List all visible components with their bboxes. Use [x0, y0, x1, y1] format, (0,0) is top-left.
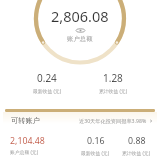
staticText: 0.88: [128, 135, 146, 147]
staticText: 最新收益 (元): [33, 88, 62, 95]
staticText: 1.28: [103, 71, 123, 85]
staticText: 累计收益 (元): [99, 88, 128, 95]
staticText: 0.16: [87, 135, 105, 147]
staticText: 近30天年化投资回报率3.98%: [79, 117, 147, 124]
button[interactable]: Toggle balance visibility: [75, 25, 86, 36]
staticText: 2,104.48: [10, 135, 45, 147]
button[interactable]: 可转账户: [3, 112, 157, 157]
staticText: 可转账户: [11, 116, 40, 125]
staticText: 0.24: [37, 71, 57, 85]
staticText: 累计收益 (元): [122, 150, 151, 157]
staticText: 账户总额: [67, 35, 93, 43]
staticText: 最新收益 (元): [81, 150, 110, 157]
staticText: 2,806.08: [51, 6, 109, 26]
staticText: 账户总额 (元): [10, 149, 39, 156]
